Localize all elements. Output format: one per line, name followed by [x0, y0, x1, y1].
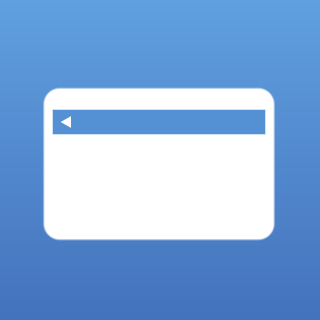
button[interactable]: Back	[53, 110, 79, 134]
